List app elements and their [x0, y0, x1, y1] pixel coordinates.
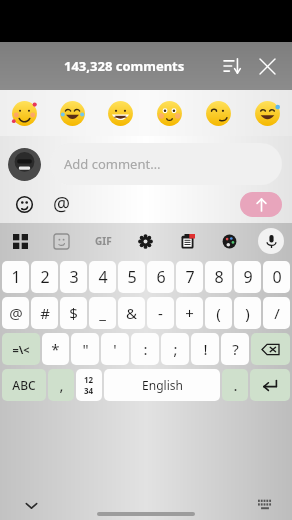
button[interactable]: 5: [118, 261, 145, 293]
button[interactable]: Themes: [208, 223, 250, 259]
button[interactable]: ABC: [2, 369, 46, 401]
button[interactable]: Send: [240, 192, 282, 217]
button[interactable]: Emoji 3: [96, 90, 145, 136]
staticText: :: [143, 339, 148, 359]
button[interactable]: Settings: [124, 223, 166, 259]
staticText: #: [40, 303, 50, 323]
button[interactable]: Close: [252, 51, 282, 81]
staticText: @: [53, 191, 71, 217]
button[interactable]: Sort comments: [218, 52, 246, 80]
button[interactable]: Emoji 4: [145, 90, 194, 136]
staticText: (: [216, 303, 221, 323]
staticText: ): [245, 303, 250, 323]
staticText: @: [9, 303, 23, 323]
staticText: 8: [214, 266, 224, 288]
button[interactable]: 0: [263, 261, 290, 293]
staticText: +: [185, 303, 194, 323]
button[interactable]: Clipboard: [166, 223, 208, 259]
staticText: .: [233, 375, 238, 395]
button[interactable]: $: [60, 297, 87, 329]
button[interactable]: @: [2, 297, 29, 329]
staticText: 143,328 comments: [64, 57, 185, 75]
button[interactable]: Hide keyboard: [18, 492, 44, 518]
button[interactable]: Backspace: [251, 333, 290, 365]
button[interactable]: Add comment…: [50, 143, 282, 185]
button[interactable]: #: [31, 297, 58, 329]
button[interactable]: Emoji 6: [243, 90, 292, 136]
button[interactable]: 4: [89, 261, 116, 293]
button[interactable]: 2: [31, 261, 58, 293]
button[interactable]: *: [42, 333, 69, 365]
button[interactable]: Emoji 5: [194, 90, 243, 136]
button[interactable]: GIF: [82, 223, 124, 259]
staticText: =\<: [12, 342, 30, 357]
button[interactable]: Your profile: [8, 148, 41, 181]
button[interactable]: Change keyboard: [252, 492, 278, 518]
staticText: $: [69, 303, 78, 323]
button[interactable]: Stickers: [10, 190, 38, 218]
staticText: -: [158, 303, 163, 323]
staticText: 2: [40, 266, 50, 288]
staticText: English: [142, 377, 183, 393]
button[interactable]: Enter: [250, 369, 290, 401]
staticText: 7: [185, 266, 195, 288]
button[interactable]: English: [104, 369, 220, 401]
button[interactable]: /: [263, 297, 290, 329]
button[interactable]: ;: [161, 333, 189, 365]
staticText: GIF: [95, 234, 112, 248]
button[interactable]: ': [101, 333, 129, 365]
button[interactable]: 9: [234, 261, 261, 293]
button[interactable]: Voice input: [250, 223, 292, 259]
staticText: 9: [243, 266, 253, 288]
button[interactable]: Emoji 1: [0, 90, 48, 136]
button[interactable]: (: [205, 297, 232, 329]
button[interactable]: +: [176, 297, 203, 329]
button[interactable]: 12: [76, 369, 102, 401]
staticText: Add comment…: [64, 155, 161, 173]
button[interactable]: ,: [48, 369, 74, 401]
staticText: 3: [69, 266, 79, 288]
staticText: 6: [156, 266, 166, 288]
button[interactable]: .: [222, 369, 248, 401]
staticText: ": [82, 339, 89, 359]
staticText: 0: [272, 266, 282, 288]
staticText: 4: [98, 266, 108, 288]
staticText: _: [99, 303, 106, 323]
button[interactable]: Emoji 2: [48, 90, 96, 136]
button[interactable]: 1: [2, 261, 29, 293]
other: Enter: [250, 369, 290, 401]
staticText: 5: [127, 266, 137, 288]
button[interactable]: 6: [147, 261, 174, 293]
button[interactable]: Mention: [48, 190, 76, 218]
button[interactable]: 7: [176, 261, 203, 293]
staticText: ,: [59, 375, 64, 395]
button[interactable]: =\<: [2, 333, 40, 365]
button[interactable]: ?: [221, 333, 249, 365]
button[interactable]: _: [89, 297, 116, 329]
staticText: 1: [11, 266, 21, 288]
button[interactable]: -: [147, 297, 174, 329]
button[interactable]: Sticker: [41, 223, 82, 259]
staticText: ': [113, 339, 117, 359]
button[interactable]: !: [191, 333, 219, 365]
staticText: !: [203, 339, 208, 359]
staticText: 12: [84, 374, 94, 385]
button[interactable]: 3: [60, 261, 87, 293]
other: Backspace: [251, 333, 290, 365]
staticText: ?: [232, 339, 239, 359]
staticText: &: [126, 303, 137, 323]
button[interactable]: 8: [205, 261, 232, 293]
button[interactable]: ): [234, 297, 261, 329]
button[interactable]: &: [118, 297, 145, 329]
staticText: *: [51, 339, 60, 359]
button[interactable]: ": [71, 333, 99, 365]
button[interactable]: :: [131, 333, 159, 365]
staticText: ABC: [12, 377, 36, 393]
staticText: ;: [173, 339, 178, 359]
staticText: /: [274, 303, 280, 323]
staticText: 34: [84, 385, 94, 396]
button[interactable]: Apps: [0, 223, 41, 259]
